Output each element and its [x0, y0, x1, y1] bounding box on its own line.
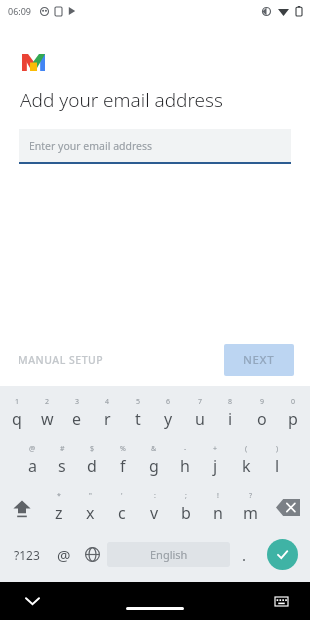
button[interactable]: ! [202, 484, 234, 531]
button[interactable]: & [138, 437, 169, 484]
button[interactable]: At sign [49, 531, 78, 578]
button[interactable]: 7 [184, 390, 215, 437]
button[interactable]: . [230, 531, 259, 578]
staticText: ; [185, 491, 187, 501]
button[interactable]: 1 [2, 390, 32, 437]
staticText: ' [121, 491, 123, 501]
staticText: & [151, 444, 157, 454]
button[interactable]: * [43, 484, 74, 531]
button[interactable]: 9 [246, 390, 277, 437]
staticText: ?123 [14, 547, 40, 563]
staticText: x [86, 502, 95, 524]
staticText: @ [57, 545, 71, 565]
staticText: 06:09 [8, 5, 32, 17]
staticText: # [60, 444, 65, 454]
staticText: 3 [75, 397, 80, 407]
button[interactable]: MANUAL SETUP [18, 345, 104, 375]
staticText: f [120, 455, 126, 477]
staticText: u [195, 408, 205, 430]
staticText: a [28, 455, 37, 477]
button[interactable]: NEXT [224, 344, 294, 376]
staticText: 5 [136, 397, 141, 407]
button[interactable]: @ [17, 437, 47, 484]
staticText: ! [217, 491, 219, 501]
staticText: % [120, 444, 126, 454]
staticText: d [87, 455, 97, 477]
button[interactable]: ) [262, 437, 293, 484]
button[interactable]: Shift [0, 484, 43, 531]
staticText: Add your email address [20, 87, 223, 113]
staticText: $ [90, 444, 95, 454]
button[interactable]: ; [170, 484, 202, 531]
button[interactable]: - [169, 437, 200, 484]
button[interactable]: 5 [122, 390, 153, 437]
staticText: e [72, 408, 82, 430]
button[interactable]: Switch keyboard [270, 590, 292, 612]
staticText: @ [29, 444, 36, 454]
staticText: 7 [198, 397, 203, 407]
button[interactable]: ( [231, 437, 262, 484]
button[interactable]: Backspace [266, 484, 310, 531]
button[interactable]: English [107, 542, 230, 567]
button[interactable]: : [138, 484, 170, 531]
staticText: o [257, 408, 267, 430]
button[interactable]: # [47, 437, 77, 484]
button[interactable]: ? [234, 484, 266, 531]
button[interactable]: " [74, 484, 106, 531]
staticText: 4 [105, 397, 110, 407]
staticText: g [149, 455, 159, 477]
staticText: . [242, 545, 247, 565]
staticText: MANUAL SETUP [18, 353, 104, 367]
staticText: k [242, 455, 251, 477]
staticText: 0 [291, 397, 296, 407]
button[interactable]: 4 [92, 390, 122, 437]
button[interactable]: % [107, 437, 138, 484]
staticText: i [228, 408, 233, 430]
staticText: c [118, 502, 126, 524]
staticText: z [55, 502, 63, 524]
staticText: y [164, 408, 173, 430]
staticText: Enter your email address [29, 139, 153, 153]
button[interactable]: ?123 [4, 531, 49, 578]
staticText: j [213, 455, 218, 477]
staticText: NEXT [243, 352, 275, 368]
staticText: b [181, 502, 191, 524]
button[interactable]: 6 [153, 390, 184, 437]
staticText: 1 [15, 397, 20, 407]
button[interactable]: Change language [78, 531, 107, 578]
staticText: + [213, 444, 218, 454]
button[interactable]: $ [77, 437, 107, 484]
staticText: v [150, 502, 159, 524]
staticText: w [41, 408, 54, 430]
staticText: " [89, 491, 92, 501]
button[interactable]: + [200, 437, 231, 484]
button[interactable]: 0 [277, 390, 308, 437]
button[interactable]: Enter your email address [19, 129, 291, 162]
staticText: p [288, 408, 298, 430]
button[interactable]: 2 [32, 390, 62, 437]
staticText: h [180, 455, 190, 477]
button[interactable]: Hide keyboard [20, 589, 44, 613]
staticText: * [57, 491, 61, 501]
button[interactable]: Home [126, 607, 184, 610]
button[interactable]: 8 [215, 390, 246, 437]
staticText: q [12, 408, 22, 430]
staticText: - [184, 444, 187, 454]
staticText: English [150, 547, 188, 562]
button[interactable]: ' [106, 484, 138, 531]
button[interactable]: Done [259, 531, 306, 578]
staticText: 2 [45, 397, 50, 407]
staticText: ) [276, 444, 279, 454]
staticText: m [243, 502, 258, 524]
staticText: 6 [166, 397, 171, 407]
staticText: r [104, 408, 111, 430]
button[interactable]: 3 [62, 390, 92, 437]
staticText: n [213, 502, 223, 524]
staticText: 8 [228, 397, 233, 407]
staticText: 9 [260, 397, 265, 407]
staticText: t [135, 408, 141, 430]
staticText: ? [249, 491, 253, 501]
staticText: l [275, 455, 280, 477]
staticText: s [58, 455, 66, 477]
staticText: : [154, 491, 156, 501]
